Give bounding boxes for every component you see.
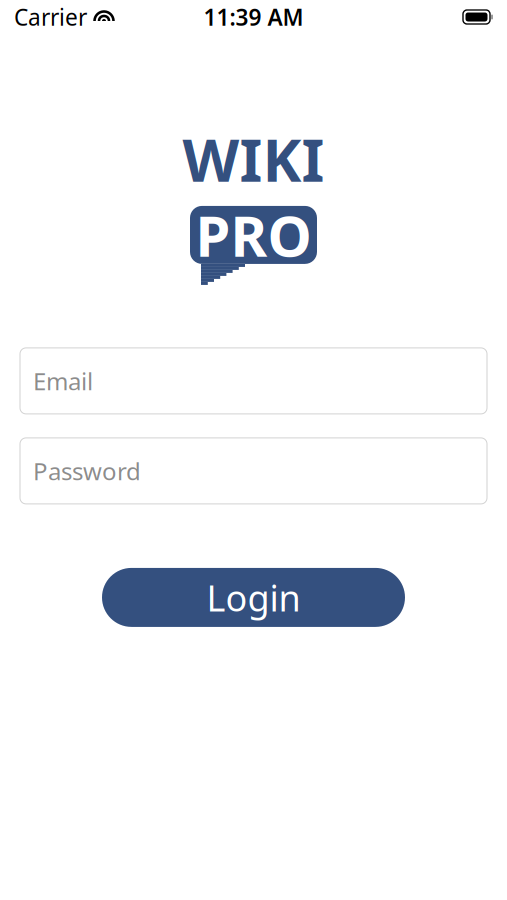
button[interactable]: Email (20, 348, 487, 414)
staticText: 11:39 AM (203, 2, 303, 32)
button[interactable]: Password (20, 438, 487, 504)
staticText: Password (33, 455, 141, 487)
staticText: PRO (195, 198, 311, 272)
staticText: Login (206, 573, 300, 621)
button[interactable]: Login (102, 568, 405, 627)
staticText: Carrier (14, 2, 87, 32)
staticText: WIKI (182, 120, 324, 198)
staticText: Email (33, 365, 93, 397)
